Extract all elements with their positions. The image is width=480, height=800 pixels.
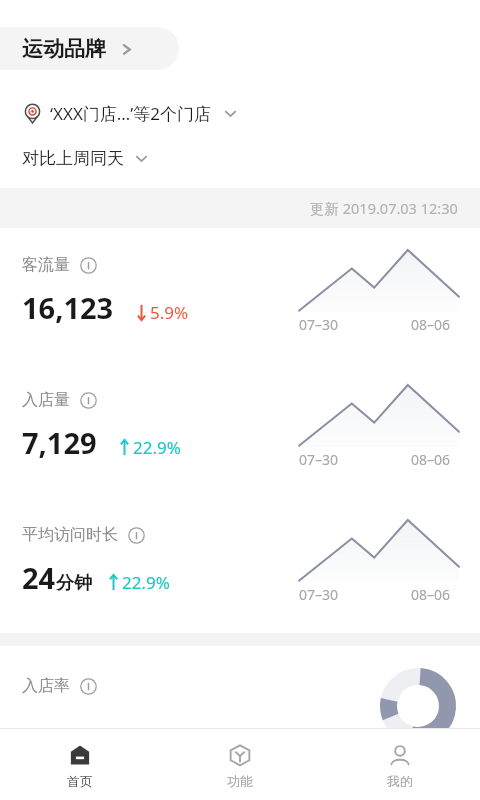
staticText: 客流量 [22,255,70,275]
staticText: 24 [22,558,56,597]
staticText: 08–06 [411,585,451,604]
staticText: 入店量 [22,390,70,410]
staticText: 入店率 [22,676,70,696]
other: 首页 [68,743,92,767]
button[interactable]: 入店量 [0,363,480,498]
other: 我的 [388,743,412,767]
staticText: 更新 2019.07.03 12:30 [310,198,458,218]
button[interactable]: 对比上周同天 [0,148,148,169]
button[interactable]: 平均访问时长 [0,498,480,633]
staticText: 对比上周同天 [22,148,124,169]
staticText: 22.9% [122,571,170,594]
staticText: 16,123 [22,288,114,327]
staticText: 7,129 [22,423,97,462]
button[interactable]: 功能 [160,729,320,800]
staticText: 08–06 [411,315,451,334]
staticText: 首页 [67,773,93,789]
staticText: 5.9% [150,301,189,324]
staticText: 08–06 [411,450,451,469]
button[interactable]: 入店率 [0,646,480,722]
staticText: 分钟 [56,572,92,595]
button[interactable]: ‘XXX门店…’等2个门店 [0,102,480,125]
button[interactable]: 运动品牌 [0,27,179,70]
staticText: 我的 [387,773,413,789]
staticText: 功能 [227,773,253,789]
other: 功能 [228,743,252,767]
button[interactable]: 客流量 [0,228,480,363]
staticText: 平均访问时长 [22,525,118,545]
staticText: 22.9% [133,436,181,459]
button[interactable]: 我的 [320,729,480,800]
staticText: ‘XXX门店…’等2个门店 [50,102,212,125]
staticText: 07–30 [299,315,339,334]
button[interactable]: 首页 [0,729,160,800]
staticText: 运动品牌 [22,36,106,62]
staticText: 07–30 [299,450,339,469]
staticText: 07–30 [299,585,339,604]
